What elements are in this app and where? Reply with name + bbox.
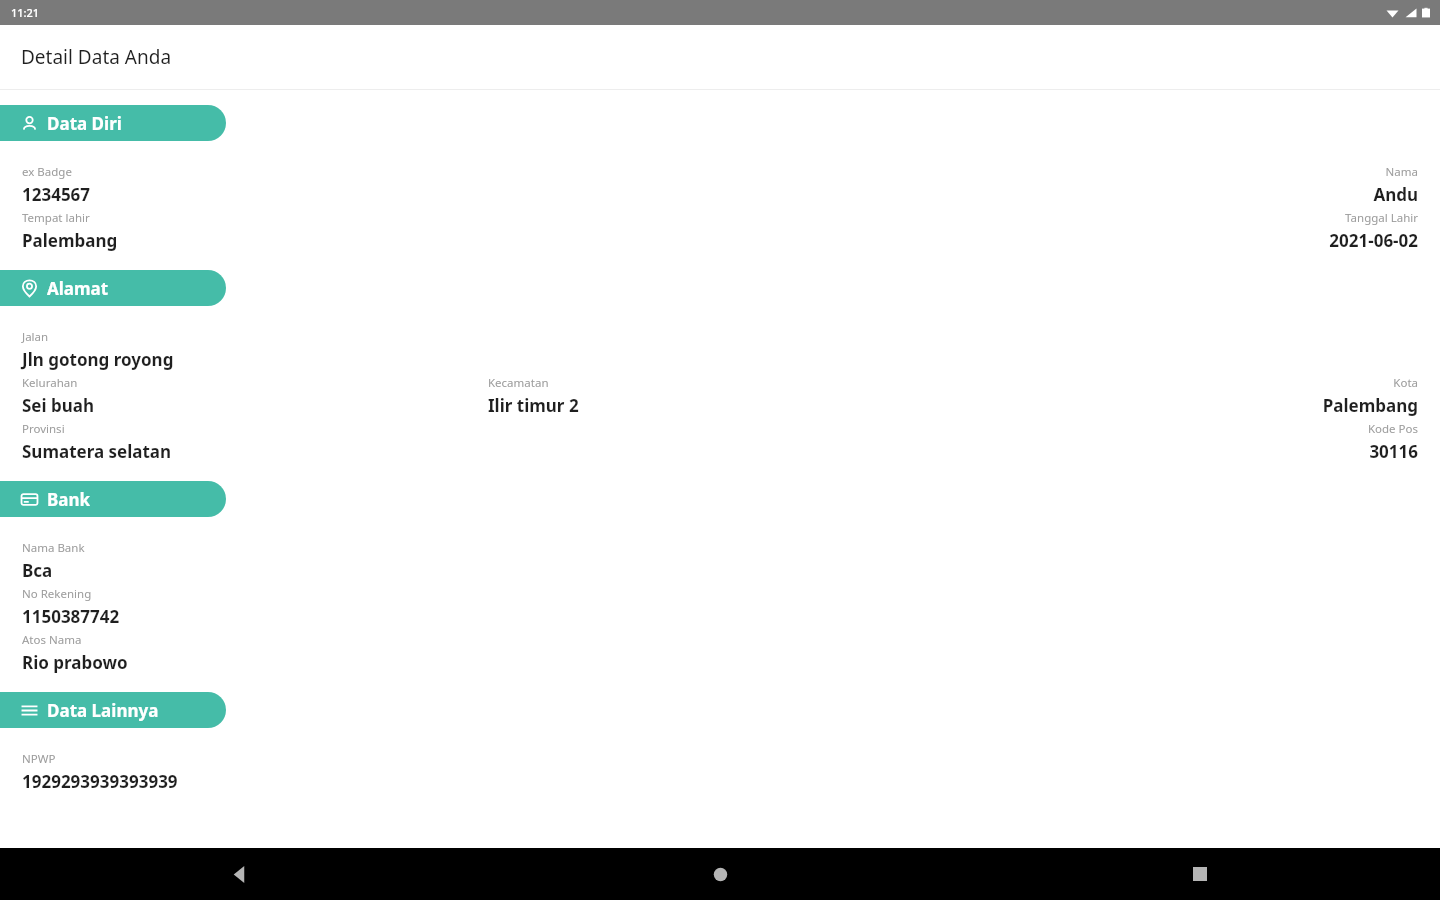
staticText: 2021-06-02 (720, 229, 1418, 252)
staticText: Alamat (47, 277, 109, 300)
button[interactable]: Data Lainnya (0, 692, 226, 728)
staticText: Jalan (22, 329, 1418, 345)
staticText: Andu (720, 183, 1418, 206)
staticText: Provinsi (22, 421, 720, 437)
button[interactable]: Home (696, 850, 744, 898)
staticText: Nama (720, 164, 1418, 180)
staticText: 1150387742 (22, 605, 1418, 628)
staticText: Kecamatan (488, 375, 953, 391)
staticText: Bca (22, 559, 1418, 582)
button[interactable]: Data Diri (0, 105, 226, 141)
staticText: Kelurahan (22, 375, 488, 391)
staticText: Kode Pos (720, 421, 1418, 437)
staticText: Palembang (953, 394, 1418, 417)
staticText: Rio prabowo (22, 651, 1418, 674)
button[interactable]: Bank (0, 481, 226, 517)
staticText: Nama Bank (22, 540, 1418, 556)
staticText: NPWP (22, 751, 1418, 767)
staticText: 30116 (720, 440, 1418, 463)
staticText: Data Lainnya (47, 699, 159, 722)
staticText: Tempat lahir (22, 210, 720, 226)
button[interactable]: Alamat (0, 270, 226, 306)
staticText: Kota (953, 375, 1418, 391)
staticText: No Rekening (22, 586, 1418, 602)
staticText: Ilir timur 2 (488, 394, 953, 417)
staticText: ex Badge (22, 164, 720, 180)
staticText: Jln gotong royong (22, 348, 1418, 371)
staticText: 1929293939393939 (22, 770, 1418, 793)
staticText: 11:21 (11, 5, 40, 20)
button[interactable]: Recent apps (1176, 850, 1224, 898)
staticText: 1234567 (22, 183, 720, 206)
button[interactable]: Back (216, 850, 264, 898)
staticText: Sumatera selatan (22, 440, 720, 463)
staticText: Sei buah (22, 394, 488, 417)
staticText: Bank (47, 488, 91, 511)
staticText: Palembang (22, 229, 720, 252)
staticText: Detail Data Anda (21, 44, 172, 70)
staticText: Atos Nama (22, 632, 1418, 648)
staticText: Tanggal Lahir (720, 210, 1418, 226)
staticText: Data Diri (47, 112, 122, 135)
